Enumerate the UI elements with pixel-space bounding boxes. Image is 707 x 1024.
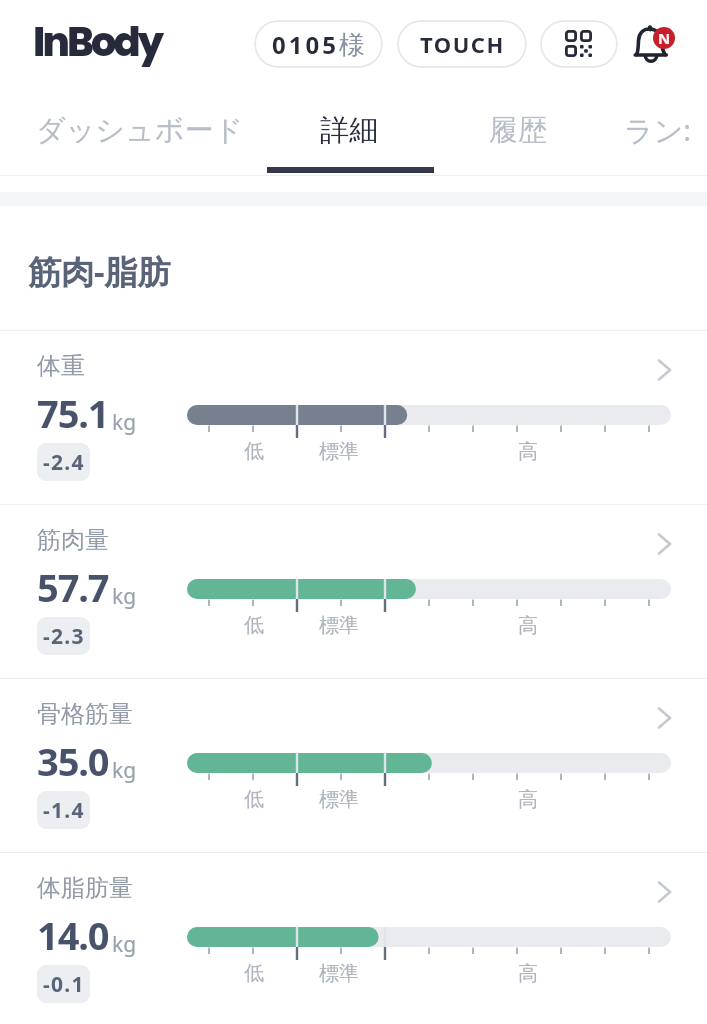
other: Open 骨格筋量 detail (652, 702, 678, 728)
staticText: 低 (244, 961, 264, 986)
staticText: 35.0 (37, 735, 109, 787)
staticText: 14.0 (37, 909, 109, 961)
staticText: 骨格筋量 (37, 699, 133, 729)
staticText: 履歴 (489, 112, 547, 149)
staticText: kg (112, 756, 137, 785)
staticText: 高 (518, 961, 538, 986)
staticText: kg (112, 408, 137, 437)
button[interactable]: 骨格筋量 (0, 679, 707, 852)
staticText: ラン: (624, 110, 692, 150)
other: Open 体脂肪量 detail (652, 876, 678, 902)
staticText: 体脂肪量 (37, 873, 133, 903)
other: Open 体重 detail (652, 354, 678, 380)
button[interactable]: ダッシュボード (36, 99, 244, 161)
staticText: 筋肉-脂肪 (28, 249, 171, 294)
staticText: 体重 (37, 351, 85, 381)
button[interactable]: 筋肉量 (0, 505, 707, 678)
staticText: 低 (244, 439, 264, 464)
staticText: -1.4 (43, 796, 85, 825)
staticText: 57.7 (37, 561, 109, 613)
staticText: kg (112, 930, 137, 959)
staticText: 0105様 (272, 28, 365, 61)
staticText: -2.3 (43, 622, 85, 651)
staticText: InBody (33, 14, 162, 70)
staticText: kg (112, 582, 137, 611)
button[interactable]: 履歴 (489, 99, 547, 161)
other: Open 筋肉量 detail (652, 528, 678, 554)
staticText: -0.1 (43, 970, 85, 999)
staticText: N (658, 28, 671, 48)
staticText: 標準 (319, 613, 359, 638)
staticText: TOUCH (420, 29, 505, 59)
button[interactable]: TOUCH (397, 20, 527, 68)
button[interactable]: 体脂肪量 (0, 853, 707, 1024)
button[interactable]: 詳細 (320, 99, 378, 161)
staticText: 標準 (319, 787, 359, 812)
staticText: 高 (518, 787, 538, 812)
staticText: 詳細 (320, 112, 378, 149)
staticText: 低 (244, 787, 264, 812)
button[interactable]: 0105様 (254, 20, 383, 68)
staticText: 高 (518, 439, 538, 464)
button[interactable]: InBody (33, 14, 162, 70)
button[interactable]: 体重 (0, 331, 707, 504)
button[interactable]: QR code scanner (540, 20, 618, 68)
staticText: 標準 (319, 439, 359, 464)
staticText: 筋肉量 (37, 525, 109, 555)
staticText: -2.4 (43, 448, 85, 477)
staticText: ダッシュボード (36, 112, 244, 149)
button[interactable]: Notifications (626, 15, 686, 75)
staticText: 標準 (319, 961, 359, 986)
staticText: 75.1 (37, 387, 109, 439)
button[interactable]: ラン: (624, 99, 692, 161)
staticText: 低 (244, 613, 264, 638)
staticText: 高 (518, 613, 538, 638)
